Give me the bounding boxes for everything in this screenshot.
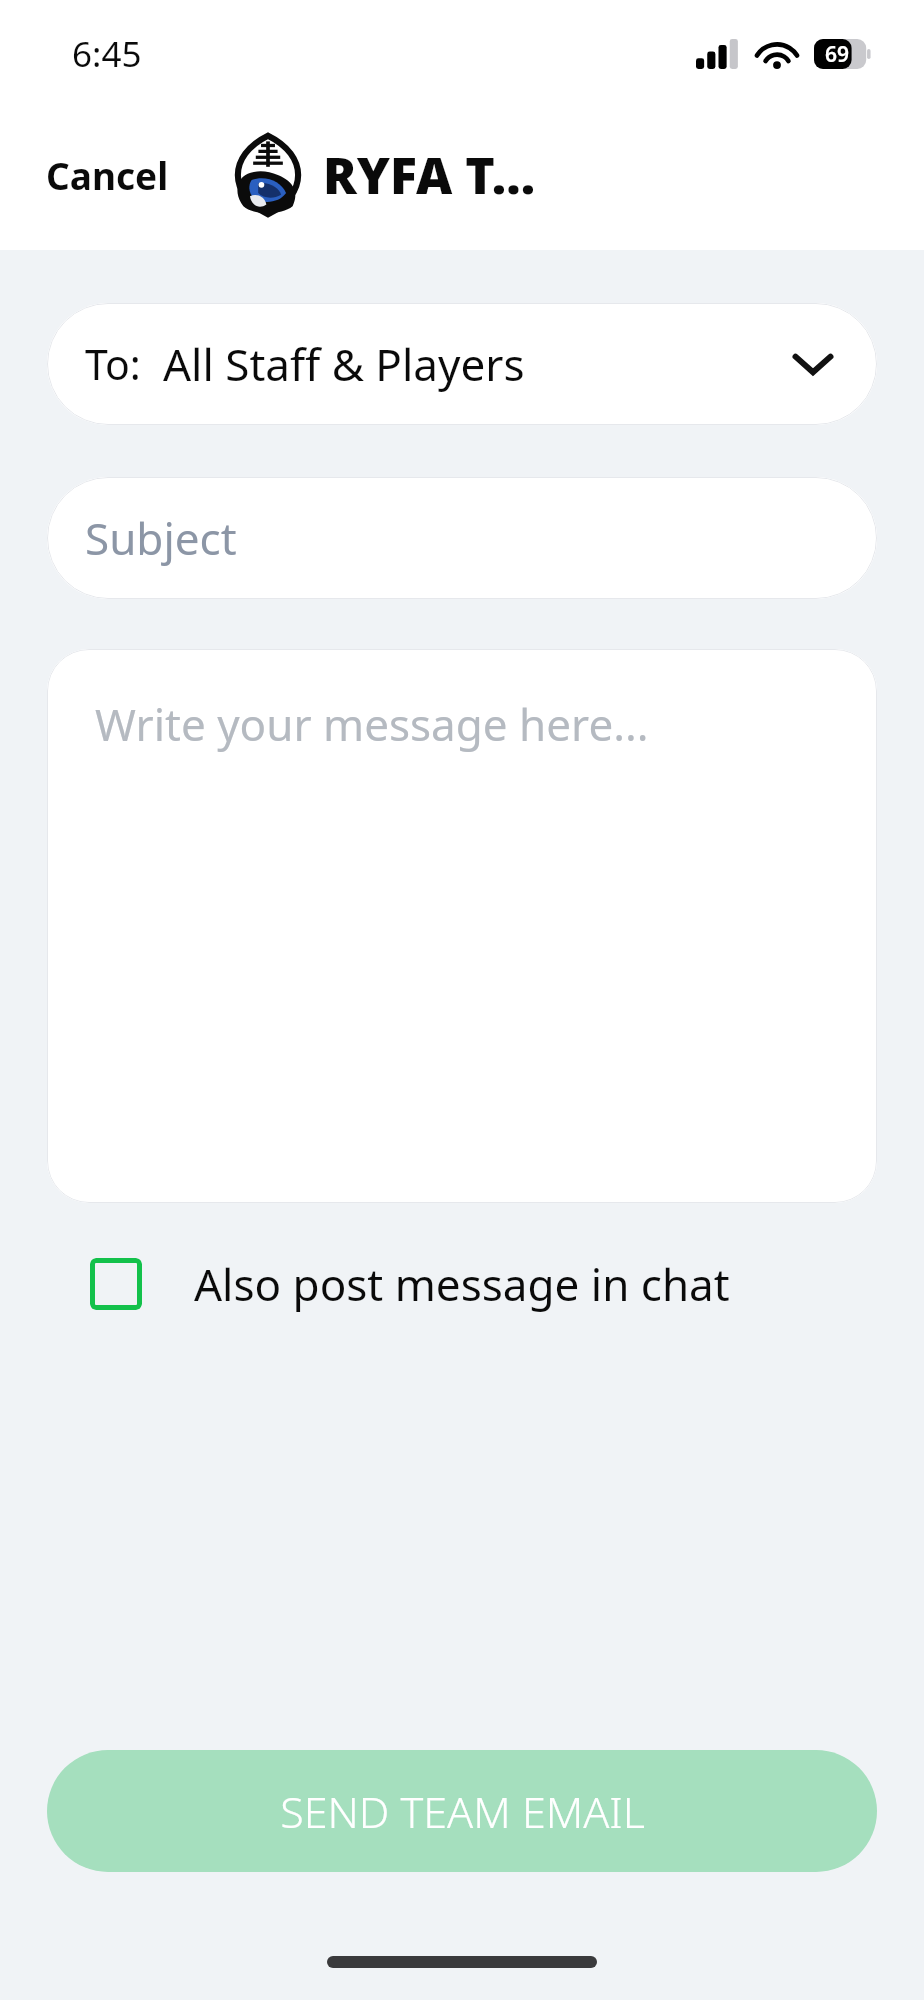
staticText: RYFA T... [323, 141, 536, 209]
staticText: 69 [825, 40, 850, 69]
other: Open recipient list [787, 338, 839, 390]
button[interactable]: Write your message here... [47, 649, 877, 1203]
staticText: 6:45 [72, 30, 142, 78]
button[interactable]: SEND TEAM EMAIL [47, 1750, 877, 1872]
staticText: Cancel [46, 150, 169, 200]
button[interactable]: To: [47, 303, 877, 425]
staticText: Also post message in chat [194, 1254, 730, 1314]
staticText: SEND TEAM EMAIL [280, 1782, 645, 1841]
button[interactable]: Subject [47, 477, 877, 599]
button[interactable]: Cancel [0, 136, 179, 214]
staticText: All Staff & Players [163, 334, 525, 394]
staticText: Subject [85, 508, 237, 568]
staticText: To: [85, 336, 141, 392]
button[interactable]: Also post message in chat [90, 1254, 730, 1314]
staticText: Write your message here... [95, 694, 649, 754]
